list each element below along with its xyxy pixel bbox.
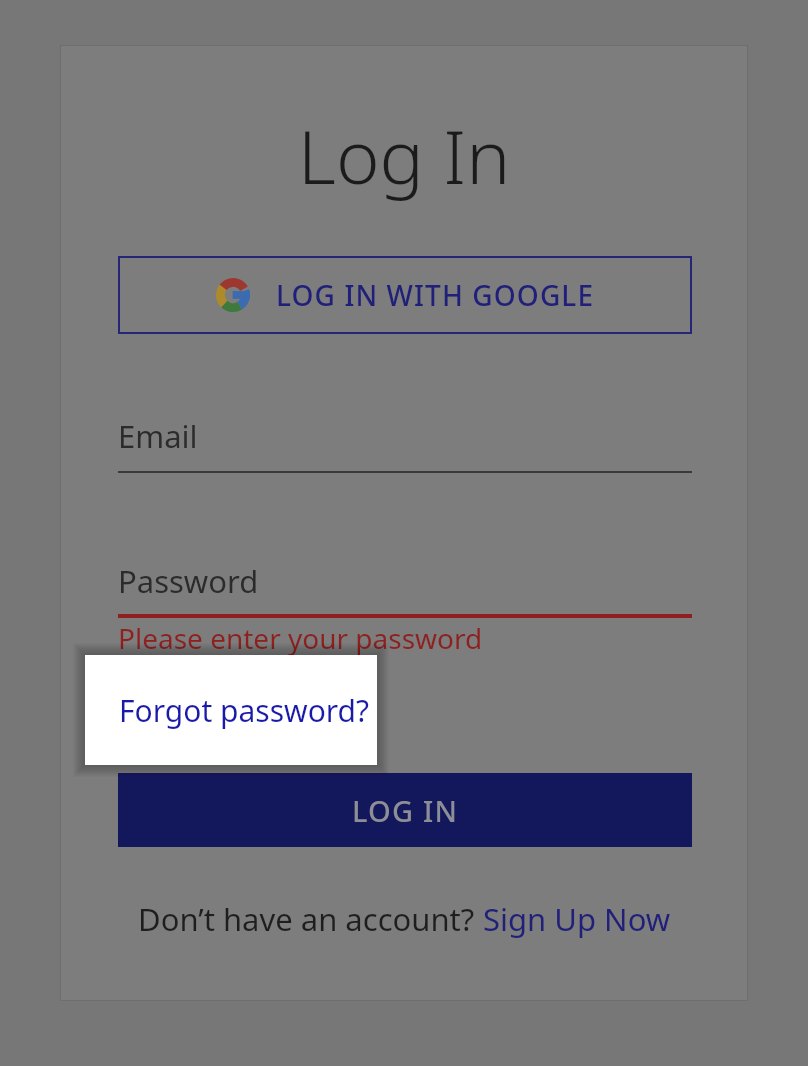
staticText: Please enter your password bbox=[118, 619, 483, 657]
staticText: LOG IN bbox=[352, 791, 459, 830]
staticText: Don’t have an account? bbox=[138, 898, 483, 940]
button[interactable]: Password bbox=[118, 560, 692, 618]
staticText: LOG IN WITH GOOGLE bbox=[276, 276, 595, 314]
staticText: Password bbox=[118, 560, 259, 602]
staticText: Sign Up Now bbox=[483, 898, 671, 940]
staticText: Forgot password? bbox=[119, 690, 370, 731]
button[interactable]: Sign Up Now bbox=[483, 898, 671, 940]
staticText: Email bbox=[118, 415, 198, 457]
button[interactable]: LOG IN bbox=[118, 773, 692, 847]
other: Google logo bbox=[216, 278, 250, 312]
button[interactable]: Google logo bbox=[118, 256, 692, 334]
button[interactable]: Forgot password? bbox=[85, 655, 377, 765]
staticText: Log In bbox=[60, 105, 748, 206]
button[interactable]: Email bbox=[118, 415, 692, 473]
